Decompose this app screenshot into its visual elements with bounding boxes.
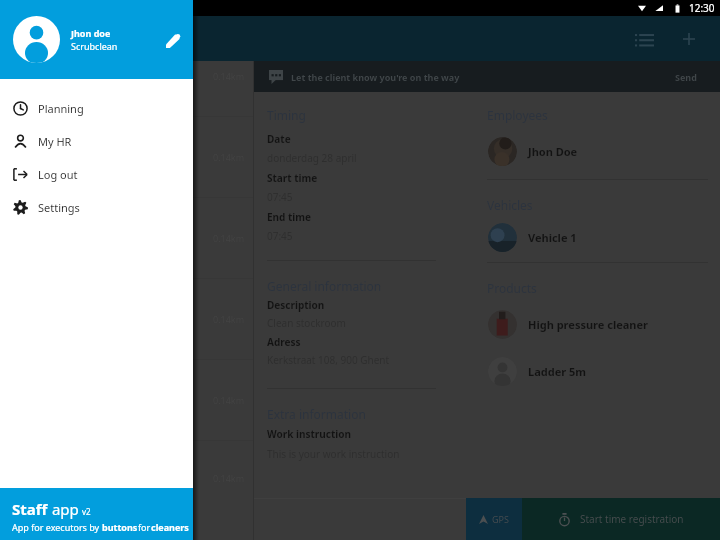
button[interactable]: 0.14km: [0, 441, 253, 515]
button[interactable]: Vehicle 1: [487, 216, 709, 258]
staticText: Planning: [38, 101, 84, 116]
button[interactable]: Log out: [0, 158, 193, 191]
staticText: Send: [675, 71, 697, 83]
staticText: End time: [267, 210, 312, 224]
staticText: buttons: [102, 521, 138, 533]
staticText: GPS: [492, 513, 509, 525]
staticText: Date: [267, 132, 291, 146]
staticText: Adress: [267, 335, 301, 349]
staticText: Products: [487, 280, 537, 296]
staticText: 07:45: [267, 229, 293, 243]
staticText: Ladder 5m: [528, 364, 587, 379]
button[interactable]: 0.14km: [0, 360, 253, 440]
staticText: cleaners: [151, 521, 189, 533]
button[interactable]: Ladder 5m: [487, 350, 709, 392]
staticText: Description: [267, 298, 325, 312]
button[interactable]: List view: [627, 22, 661, 56]
staticText: My HR: [38, 134, 72, 149]
staticText: 07:45: [267, 190, 293, 204]
staticText: Scrubclean: [71, 40, 118, 52]
staticText: Jhon Doe: [528, 144, 578, 159]
staticText: Work instruction: [267, 427, 352, 441]
button[interactable]: High pressure cleaner: [487, 303, 709, 345]
staticText: Let the client know you're on the way: [291, 71, 460, 83]
staticText: Employees: [487, 107, 548, 123]
staticText: App for executors by: [12, 521, 102, 533]
staticText: Start time registration: [580, 512, 684, 526]
staticText: Timing: [267, 107, 306, 123]
staticText: High pressure cleaner: [528, 317, 648, 332]
button[interactable]: Jhon Doe: [487, 130, 709, 172]
button[interactable]: GPS: [466, 498, 522, 540]
staticText: 12:30: [689, 1, 715, 15]
staticText: Extra information: [267, 406, 366, 422]
button[interactable]: Start time registration: [522, 498, 720, 540]
staticText: This is your work instruction: [267, 447, 400, 461]
button[interactable]: Edit profile: [159, 26, 187, 54]
button[interactable]: 0.14km: [0, 117, 253, 197]
staticText: Start time: [267, 171, 318, 185]
staticText: Settings: [38, 200, 80, 215]
staticText: Clean stockroom: [267, 316, 346, 330]
button[interactable]: My HR: [0, 125, 193, 158]
staticText: Staff: [12, 499, 48, 519]
button[interactable]: 0.14km: [0, 198, 253, 278]
button[interactable]: Settings: [0, 191, 193, 224]
button[interactable]: Let the client know you're on the way: [254, 61, 720, 92]
button[interactable]: 0.14km: [0, 279, 253, 359]
staticText: General information: [267, 278, 382, 294]
button[interactable]: Planning: [0, 92, 193, 125]
staticText: app: [48, 499, 79, 519]
staticText: Vehicles: [487, 197, 533, 213]
staticText: for: [138, 521, 151, 533]
button[interactable]: 0.14km: [0, 36, 253, 116]
staticText: v2: [82, 506, 91, 517]
staticText: Log out: [38, 167, 78, 182]
button[interactable]: Add: [672, 22, 706, 56]
staticText: Kerkstraat 108, 900 Ghent: [267, 353, 390, 367]
staticText: Jhon doe: [71, 27, 111, 39]
staticText: Vehicle 1: [528, 230, 577, 245]
staticText: donderdag 28 april: [267, 151, 357, 165]
